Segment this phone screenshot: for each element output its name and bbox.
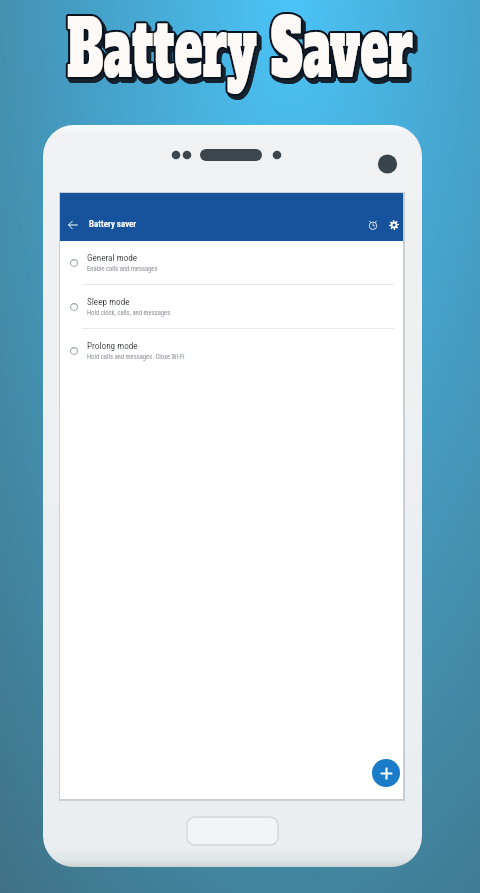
button[interactable]: Settings [384,215,404,235]
staticText: Battery Saver [0,0,478,101]
staticText: Battery Saver [0,0,478,103]
staticText: Battery Saver [0,0,480,106]
staticText: Hold calls and messages. Close Wi-Fi [87,353,185,361]
staticText: Battery Saver [3,0,480,108]
staticText: Battery Saver [0,0,479,100]
staticText: Battery Saver [0,0,478,102]
staticText: Battery Saver [3,0,480,103]
staticText: Battery Saver [0,0,480,106]
staticText: Battery Saver [0,0,480,105]
button[interactable]: Prolong mode [60,329,403,372]
staticText: Battery Saver [4,0,480,104]
staticText: Hold clock, calls, and messages [87,309,171,317]
button[interactable]: Navigate up [63,215,83,235]
staticText: General mode [87,252,138,263]
staticText: Battery Saver [0,0,479,103]
staticText: Battery Saver [5,0,480,106]
staticText: Battery Saver [2,0,480,103]
staticText: Battery Saver [1,0,480,104]
staticText: Battery Saver [0,0,480,104]
staticText: Battery Saver [2,0,480,108]
button[interactable]: Add mode [372,759,400,787]
staticText: Battery Saver [2,0,480,101]
staticText: Battery saver [89,219,137,230]
staticText: Battery Saver [0,0,479,104]
staticText: Battery Saver [1,0,480,107]
staticText: Battery Saver [0,0,480,100]
staticText: Prolong mode [87,340,138,351]
staticText: Battery Saver [1,0,480,100]
staticText: Battery Saver [1,0,480,103]
staticText: Battery Saver [1,0,480,104]
staticText: Battery Saver [0,0,480,102]
staticText: Battery Saver [2,0,480,102]
staticText: Battery Saver [2,0,480,103]
button[interactable]: Sleep mode [60,285,403,329]
staticText: Battery Saver [1,0,480,101]
staticText: Battery Saver [0,0,479,101]
staticText: Battery Saver [4,0,480,107]
staticText: Battery Saver [5,0,480,105]
staticText: Battery Saver [5,0,480,106]
button[interactable]: Schedule [363,215,383,235]
staticText: Battery Saver [3,0,480,108]
staticText: Sleep mode [87,296,130,307]
staticText: Battery Saver [3,0,480,103]
staticText: Enable calls and messages [87,265,158,273]
button[interactable]: General mode [60,241,403,285]
